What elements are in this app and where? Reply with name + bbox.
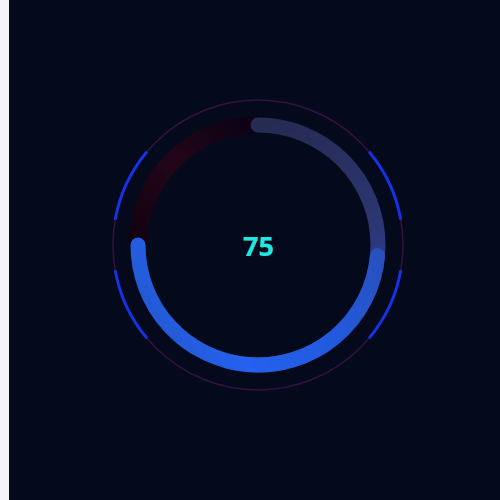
staticText: 75 — [243, 227, 274, 264]
